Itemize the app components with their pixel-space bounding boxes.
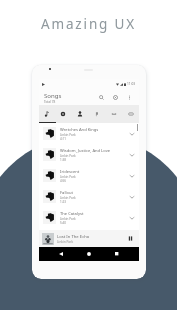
button[interactable]: Expand: [127, 129, 136, 138]
button[interactable]: More options: [125, 93, 134, 102]
button[interactable]: Expand: [127, 150, 136, 159]
button[interactable]: Lost In The Echo: [39, 230, 139, 247]
staticText: Iridescent: [60, 169, 80, 175]
staticText: Wretches And Kings: [60, 127, 99, 133]
staticText: Linkin Park: [60, 196, 76, 200]
button[interactable]: Fallout: [39, 186, 139, 207]
button[interactable]: Wisdom, Justice, And Love: [39, 144, 139, 165]
staticText: 4:56: [60, 179, 66, 183]
staticText: Fallout: [60, 190, 74, 196]
staticText: 5:40: [60, 221, 66, 225]
staticText: 1:38: [60, 158, 66, 162]
staticText: Lost In The Echo: [57, 234, 90, 240]
button[interactable]: Search: [96, 92, 107, 103]
staticText: 1:23: [60, 200, 66, 204]
button[interactable]: Iridescent: [39, 165, 139, 186]
staticText: 4:11: [60, 137, 66, 141]
button[interactable]: Recents: [111, 248, 123, 260]
staticText: 11:03: [127, 82, 136, 86]
button[interactable]: Back: [55, 248, 67, 260]
staticText: Linkin Park: [60, 133, 76, 137]
button[interactable]: Expand: [127, 171, 136, 180]
button[interactable]: Albums: [55, 105, 71, 123]
staticText: Linkin Park: [60, 154, 76, 158]
button[interactable]: Pause: [126, 234, 135, 243]
button[interactable]: Artists: [71, 105, 88, 123]
button[interactable]: The Catalyst: [39, 207, 139, 228]
button[interactable]: Expand: [127, 213, 136, 222]
button[interactable]: Folders: [122, 105, 139, 123]
staticText: Songs: [44, 91, 62, 99]
button[interactable]: Playlists: [105, 105, 122, 123]
button[interactable]: Equalizer: [110, 92, 121, 103]
staticText: Linkin Park: [60, 217, 76, 221]
staticText: Amazing UX: [41, 15, 137, 33]
button[interactable]: Expand: [127, 192, 136, 201]
staticText: The Catalyst: [60, 211, 84, 217]
button[interactable]: Wretches And Kings: [39, 123, 139, 144]
staticText: Linkin Park: [60, 175, 76, 179]
button[interactable]: Home: [83, 248, 95, 260]
button[interactable]: Songs: [39, 105, 55, 123]
button[interactable]: Genres: [88, 105, 105, 123]
staticText: Total 78: [44, 100, 56, 104]
staticText: Wisdom, Justice, And Love: [60, 148, 111, 154]
staticText: Linkin Park: [57, 240, 74, 244]
